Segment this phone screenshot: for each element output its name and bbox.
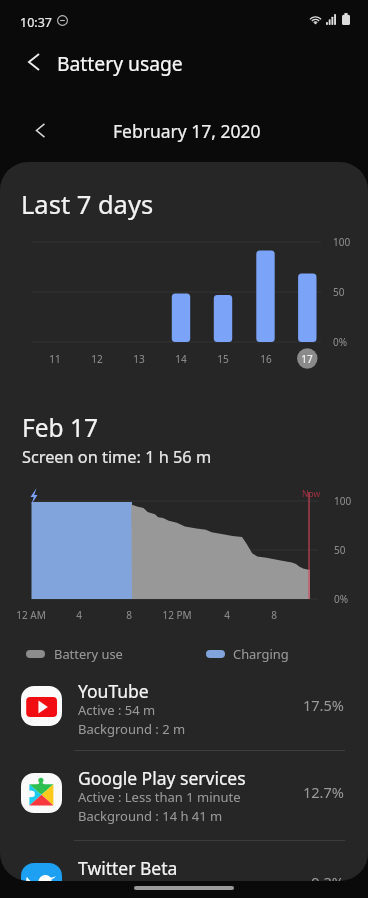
staticText: 9.3% xyxy=(311,872,344,881)
staticText: Feb 17 xyxy=(22,411,98,444)
staticText: 12 xyxy=(91,352,103,366)
staticText: Active : 54 m xyxy=(78,701,156,719)
staticText: 100 xyxy=(333,235,351,249)
staticText: 12 AM xyxy=(16,608,46,622)
staticText: February 17, 2020 xyxy=(113,119,261,143)
staticText: 0% xyxy=(334,592,349,606)
staticText: Background : 14 h 41 m xyxy=(78,807,223,825)
staticText: 100 xyxy=(334,494,352,508)
staticText: Battery usage xyxy=(57,50,183,76)
staticText: 17 xyxy=(301,352,313,366)
staticText: 8 xyxy=(126,608,132,622)
staticText: 0% xyxy=(333,335,348,349)
button[interactable]: YouTube xyxy=(0,686,368,775)
staticText: Screen on time: 1 h 56 m xyxy=(22,446,212,468)
staticText: 12 PM xyxy=(162,608,192,622)
button[interactable]: Previous day xyxy=(24,100,58,145)
staticText: Active : Less than 1 minute xyxy=(78,788,241,806)
button[interactable]: Navigate up xyxy=(0,38,52,86)
button[interactable]: Twitter Beta xyxy=(0,863,368,881)
staticText: 4 xyxy=(224,608,230,622)
button[interactable]: Google Play services xyxy=(0,773,368,862)
staticText: Battery use xyxy=(54,645,123,663)
staticText: YouTube xyxy=(78,679,149,703)
staticText: Google Play services xyxy=(78,766,246,790)
staticText: 12.7% xyxy=(302,782,344,802)
staticText: 10:37 xyxy=(20,14,52,31)
staticText: 14 xyxy=(175,352,187,366)
staticText: 4 xyxy=(76,608,82,622)
staticText: 50 xyxy=(334,543,346,557)
staticText: 16 xyxy=(260,352,272,366)
staticText: 15 xyxy=(217,352,229,366)
staticText: Now xyxy=(302,488,321,500)
staticText: Last 7 days xyxy=(21,187,154,222)
staticText: 50 xyxy=(333,285,345,299)
staticText: 8 xyxy=(271,608,277,622)
staticText: 13 xyxy=(133,352,145,366)
staticText: Twitter Beta xyxy=(78,856,178,880)
staticText: 11 xyxy=(49,352,61,366)
staticText: Charging xyxy=(233,645,289,663)
staticText: 17.5% xyxy=(302,695,344,715)
staticText: Background : 2 m xyxy=(78,720,186,738)
